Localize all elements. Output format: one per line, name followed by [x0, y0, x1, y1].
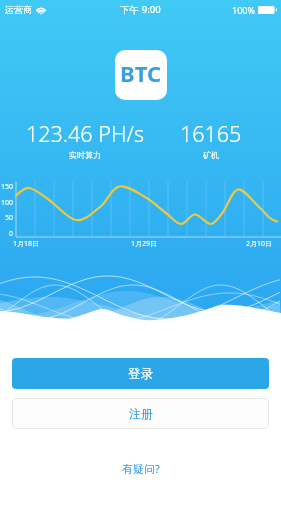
- staticText: 登录: [128, 366, 153, 382]
- staticText: 有疑问?: [122, 461, 160, 476]
- staticText: 16165: [180, 119, 242, 148]
- staticText: BTC: [120, 58, 162, 88]
- staticText: 123.46 PH/s: [26, 119, 144, 148]
- staticText: 100%: [232, 4, 255, 16]
- button[interactable]: 注册: [12, 398, 269, 429]
- staticText: 运营商: [5, 4, 32, 15]
- staticText: 实时算力: [69, 150, 101, 160]
- staticText: 注册: [129, 406, 153, 421]
- staticText: 矿机: [203, 150, 219, 160]
- staticText: 50: [5, 213, 14, 223]
- button[interactable]: 有疑问?: [116, 455, 166, 482]
- button[interactable]: 登录: [12, 358, 269, 389]
- staticText: 2月10日: [246, 239, 273, 249]
- staticText: 下午 9:00: [120, 3, 161, 16]
- staticText: 1月29日: [131, 239, 158, 249]
- staticText: 150: [1, 182, 14, 192]
- staticText: 0: [9, 229, 14, 239]
- staticText: 1月18日: [13, 239, 40, 249]
- staticText: 100: [1, 198, 14, 208]
